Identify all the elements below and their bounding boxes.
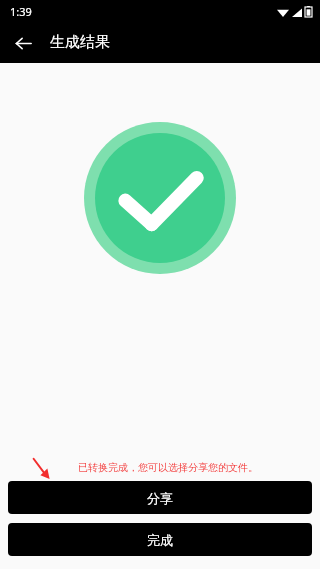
staticText: 完成 xyxy=(147,532,173,548)
button[interactable]: 分享 xyxy=(8,481,312,514)
staticText: 已转换完成，您可以选择分享您的文件。 xyxy=(78,461,258,474)
staticText: 分享 xyxy=(147,490,173,506)
staticText: 生成结果 xyxy=(50,33,110,52)
button[interactable]: 完成 xyxy=(8,523,312,556)
staticText: 1:39 xyxy=(10,4,32,19)
button[interactable]: Back xyxy=(10,30,36,56)
